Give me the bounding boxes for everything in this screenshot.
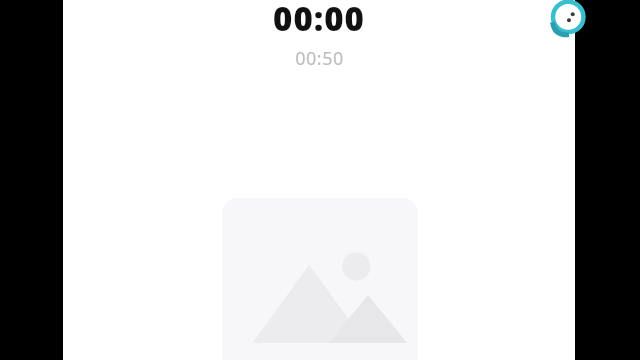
staticText: 00:00 [273,0,365,36]
staticText: 00:50 [295,46,344,71]
button[interactable]: Audio [548,0,592,38]
button[interactable] [222,198,418,360]
button[interactable]: 00:00 [63,0,575,36]
